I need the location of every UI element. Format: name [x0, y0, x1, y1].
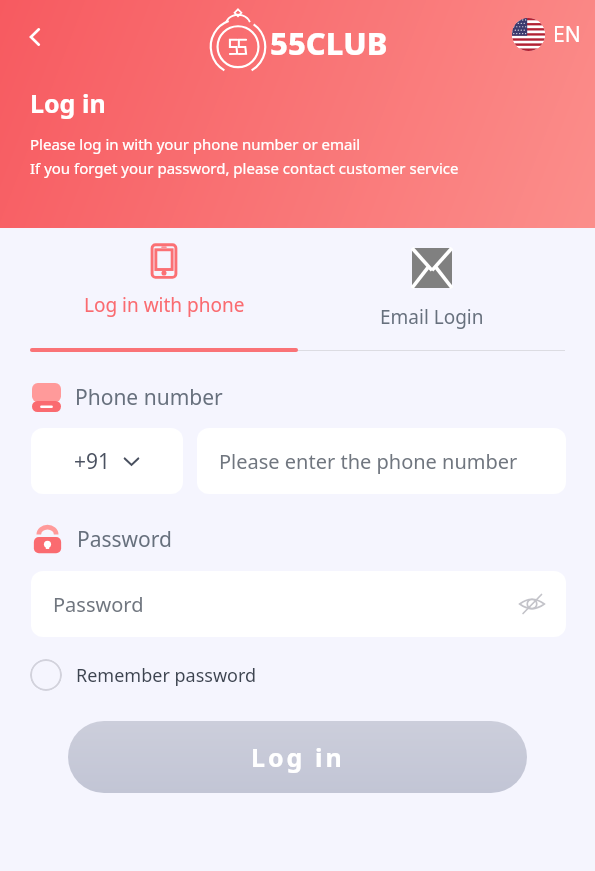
- button[interactable]: +91: [31, 428, 183, 494]
- staticText: Password: [53, 591, 144, 618]
- button[interactable]: Email Login: [298, 236, 565, 348]
- staticText: Remember password: [76, 663, 257, 688]
- button[interactable]: Password: [31, 571, 566, 637]
- button[interactable]: EN: [506, 14, 587, 55]
- staticText: Log in with phone: [84, 292, 245, 318]
- staticText: EN: [553, 20, 581, 49]
- staticText: Password: [77, 525, 172, 554]
- button[interactable]: Log in: [68, 721, 527, 793]
- staticText: Phone number: [75, 383, 223, 412]
- staticText: Email Login: [380, 304, 484, 330]
- button[interactable]: Remember password: [30, 659, 265, 691]
- button[interactable]: Back: [14, 16, 56, 58]
- staticText: +91: [74, 447, 111, 476]
- staticText: Please log in with your phone number or …: [30, 134, 361, 154]
- staticText: Log in: [30, 86, 106, 120]
- staticText: If you forget your password, please cont…: [30, 158, 459, 178]
- staticText: 55CLUB: [270, 22, 388, 64]
- staticText: Log in: [251, 740, 345, 774]
- button[interactable]: Please enter the phone number: [197, 428, 566, 494]
- button[interactable]: Show password: [512, 584, 552, 624]
- button[interactable]: Log in with phone: [30, 236, 298, 336]
- staticText: Please enter the phone number: [219, 448, 518, 475]
